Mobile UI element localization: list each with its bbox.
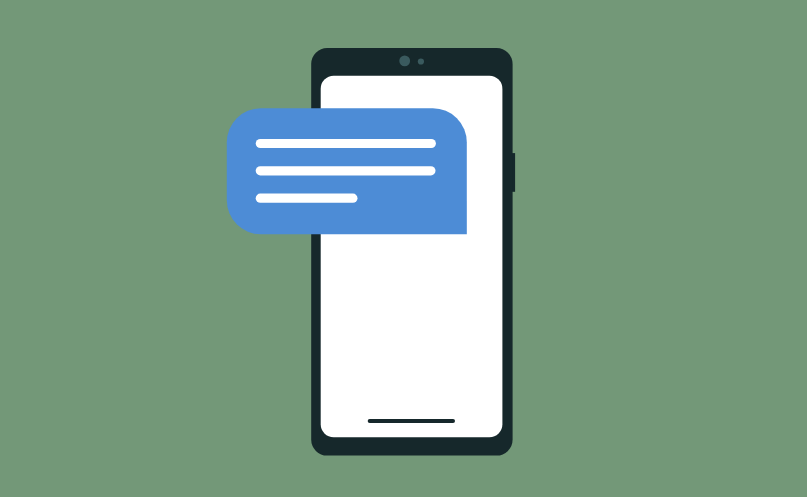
button[interactable]: Open message <box>227 108 467 234</box>
button[interactable]: Phone mockup <box>311 48 512 456</box>
